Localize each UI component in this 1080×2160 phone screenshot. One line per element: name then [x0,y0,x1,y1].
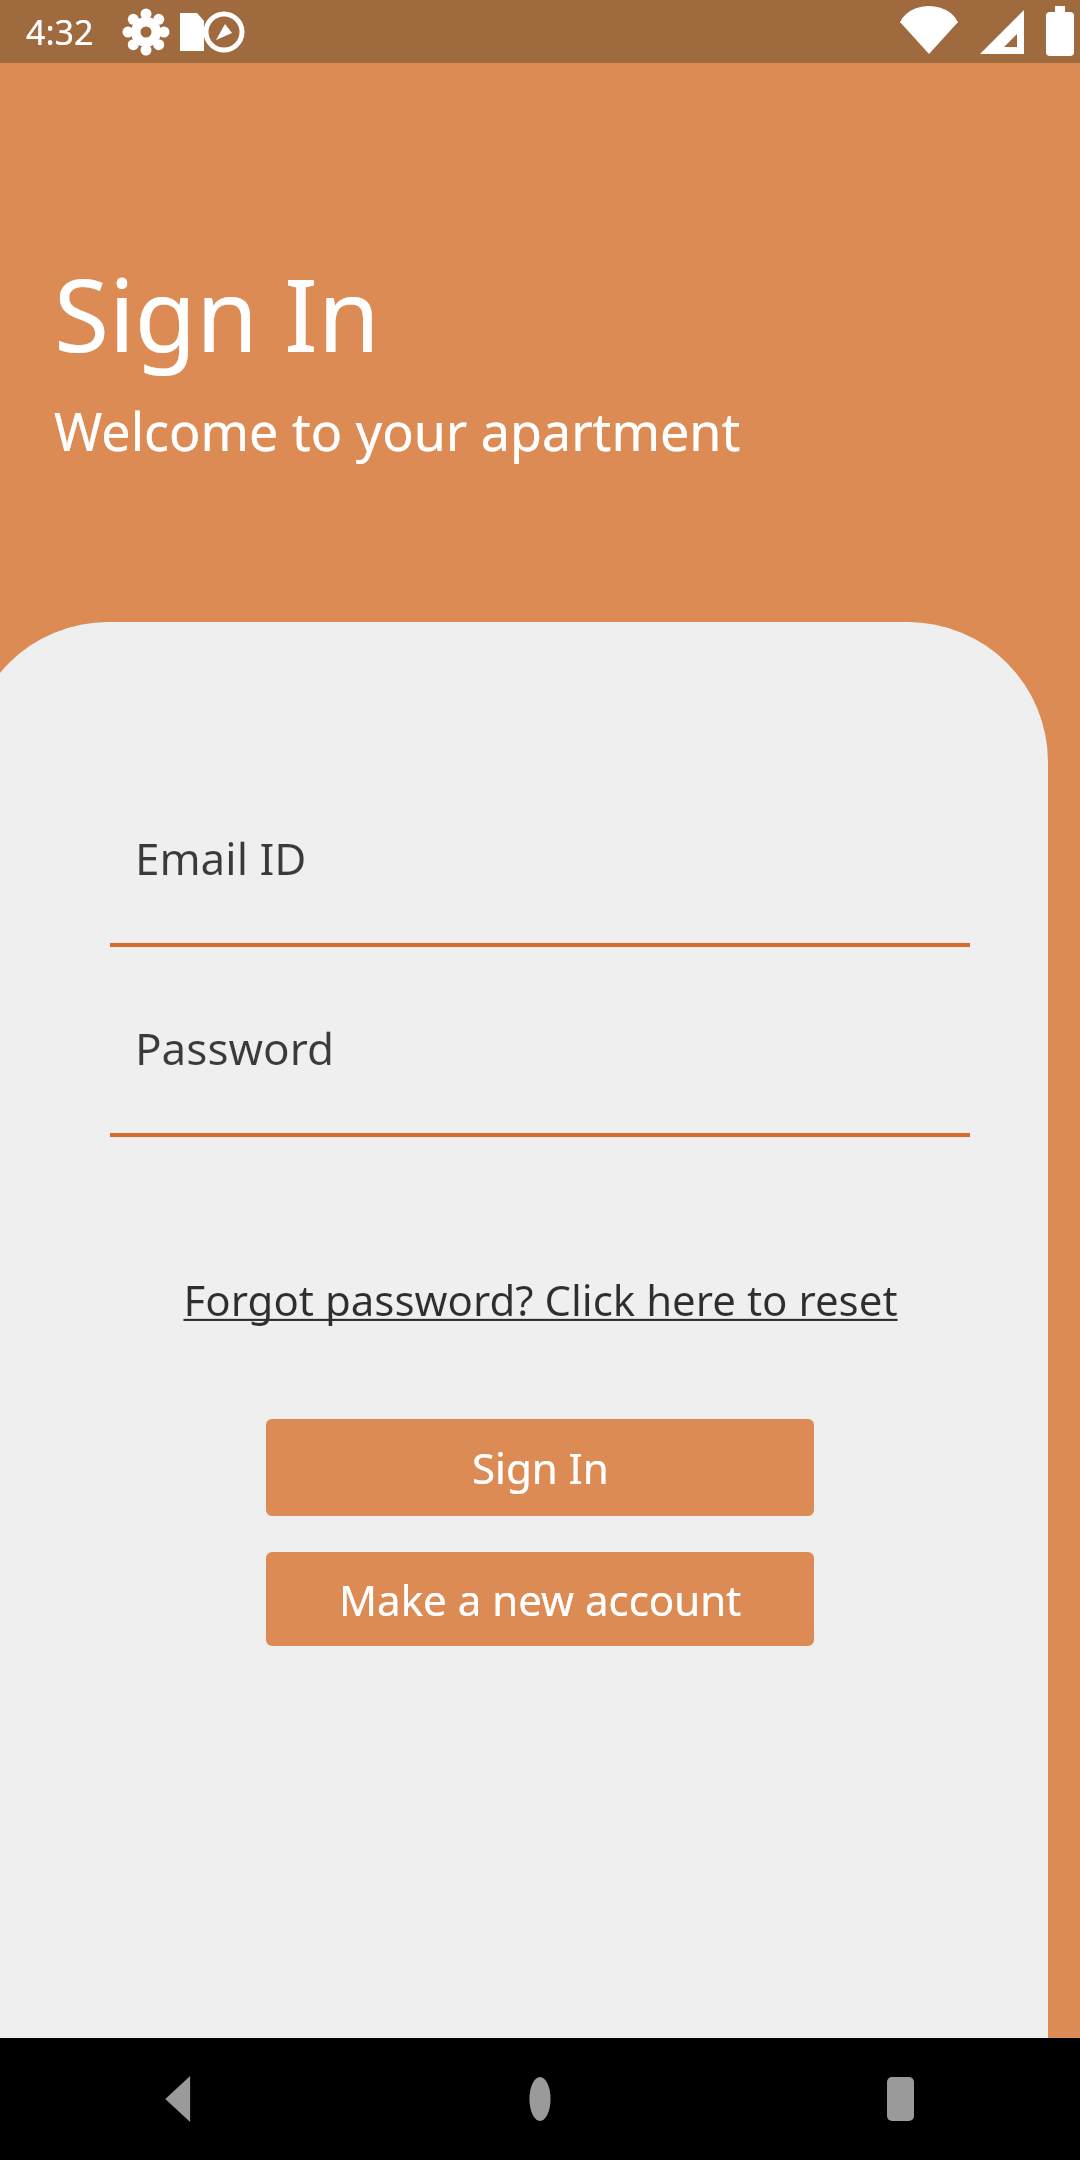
staticText: 4:32 [26,9,94,55]
staticText: Welcome to your apartment [54,395,741,466]
button[interactable]: Forgot password? Click here to reset [0,1268,1080,1330]
button[interactable]: Sign In [266,1419,814,1516]
button[interactable]: Recent apps [720,2038,1080,2160]
staticText: Email ID [135,828,307,888]
button[interactable]: Back [0,2038,360,2160]
staticText: Forgot password? Click here to reset [183,1271,898,1328]
button[interactable]: Make a new account [266,1552,814,1646]
staticText: Sign In [54,245,380,381]
button[interactable]: Home [360,2038,720,2160]
staticText: Sign In [472,1439,609,1496]
staticText: Make a new account [339,1571,742,1628]
staticText: Password [135,1018,335,1078]
